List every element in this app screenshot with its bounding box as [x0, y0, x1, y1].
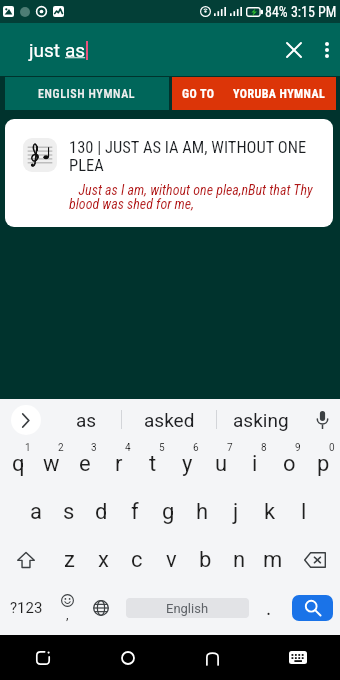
button[interactable]: z: [52, 536, 86, 584]
button[interactable]: j: [219, 488, 253, 536]
staticText: y: [182, 451, 193, 477]
button[interactable]: r: [102, 440, 136, 488]
button[interactable]: v: [154, 536, 188, 584]
staticText: s: [63, 499, 75, 525]
staticText: e: [79, 451, 91, 477]
staticText: o: [283, 451, 296, 477]
staticText: p: [317, 451, 330, 477]
button[interactable]: as: [52, 399, 121, 440]
button[interactable]: h: [185, 488, 219, 536]
staticText: m: [263, 547, 283, 573]
staticText: asked: [144, 409, 195, 431]
button[interactable]: d: [85, 488, 118, 536]
button[interactable]: ?123: [0, 584, 53, 631]
button[interactable]: s: [52, 488, 85, 536]
button[interactable]: Emoji: [53, 584, 81, 631]
staticText: c: [131, 547, 143, 573]
staticText: h: [196, 499, 209, 525]
button[interactable]: c: [120, 536, 154, 584]
staticText: f: [131, 499, 139, 525]
button[interactable]: asked: [122, 399, 216, 440]
button[interactable]: y: [170, 440, 204, 488]
button[interactable]: Search: [292, 595, 333, 621]
button[interactable]: Back: [170, 635, 255, 680]
staticText: 9: [295, 442, 301, 454]
button[interactable]: asking: [217, 399, 305, 440]
button[interactable]: e: [68, 440, 102, 488]
button[interactable]: x: [86, 536, 120, 584]
staticText: j: [233, 499, 239, 525]
staticText: r: [115, 451, 123, 477]
staticText: GO TO: [182, 87, 215, 101]
staticText: 6: [193, 442, 199, 454]
button[interactable]: b: [188, 536, 222, 584]
staticText: 1: [25, 442, 31, 454]
staticText: asking: [233, 409, 289, 431]
staticText: a: [30, 499, 42, 525]
staticText: 5: [159, 442, 165, 454]
staticText: 3: [91, 442, 97, 454]
button[interactable]: g: [151, 488, 185, 536]
staticText: ENGLISH HYMNAL: [38, 87, 136, 101]
button[interactable]: Switch language: [81, 584, 121, 631]
button[interactable]: i: [238, 440, 272, 488]
button[interactable]: ENGLISH HYMNAL: [5, 77, 169, 110]
staticText: v: [166, 547, 177, 573]
button[interactable]: q: [2, 440, 35, 488]
button[interactable]: w: [35, 440, 68, 488]
staticText: 4: [125, 442, 131, 454]
button[interactable]: Hide keyboard: [255, 635, 340, 680]
button[interactable]: p: [306, 440, 340, 488]
staticText: just: [29, 39, 65, 61]
staticText: n: [233, 547, 246, 573]
staticText: ,: [66, 607, 69, 622]
button[interactable]: Recent apps: [0, 635, 85, 680]
staticText: w: [43, 451, 60, 477]
button[interactable]: Home: [85, 635, 170, 680]
staticText: .: [266, 596, 272, 619]
staticText: i: [252, 451, 258, 477]
staticText: 2: [58, 442, 64, 454]
button[interactable]: m: [256, 536, 290, 584]
staticText: as: [76, 409, 97, 431]
staticText: ?123: [10, 599, 43, 617]
staticText: k: [264, 499, 276, 525]
button[interactable]: English: [121, 584, 254, 631]
button[interactable]: t: [136, 440, 170, 488]
staticText: 84% 3:15 PM: [265, 4, 337, 20]
button[interactable]: Clear search: [274, 23, 314, 76]
staticText: 130 | JUST AS IA AM, WITHOUT ONE PLEA: [69, 138, 327, 175]
staticText: u: [215, 451, 228, 477]
button[interactable]: More suggestions: [0, 399, 52, 440]
staticText: z: [64, 547, 75, 573]
button[interactable]: l: [287, 488, 321, 536]
button[interactable]: Backspace: [290, 536, 340, 584]
button[interactable]: More options: [314, 23, 340, 76]
button[interactable]: u: [204, 440, 238, 488]
button[interactable]: .: [254, 584, 284, 631]
button[interactable]: k: [253, 488, 287, 536]
button[interactable]: GO TO: [172, 77, 336, 110]
button[interactable]: a: [19, 488, 52, 536]
staticText: English: [166, 601, 209, 616]
staticText: Just as I am, without one plea,nBut that…: [69, 182, 313, 213]
staticText: b: [199, 547, 212, 573]
staticText: as: [65, 39, 86, 61]
button[interactable]: o: [272, 440, 306, 488]
button[interactable]: Shift: [0, 536, 52, 584]
staticText: 0: [329, 442, 335, 454]
staticText: g: [162, 499, 175, 525]
button[interactable]: n: [222, 536, 256, 584]
button[interactable]: Voice input: [305, 399, 340, 440]
button[interactable]: f: [118, 488, 151, 536]
staticText: l: [301, 499, 307, 525]
staticText: q: [12, 451, 25, 477]
staticText: 8: [261, 442, 267, 454]
button[interactable]: 130 | JUST AS IA AM, WITHOUT ONE PLEA: [5, 119, 333, 227]
staticText: x: [98, 547, 109, 573]
staticText: YORUBA HYMNAL: [233, 87, 326, 101]
staticText: t: [149, 451, 157, 477]
staticText: 7: [227, 442, 233, 454]
staticText: d: [95, 499, 108, 525]
